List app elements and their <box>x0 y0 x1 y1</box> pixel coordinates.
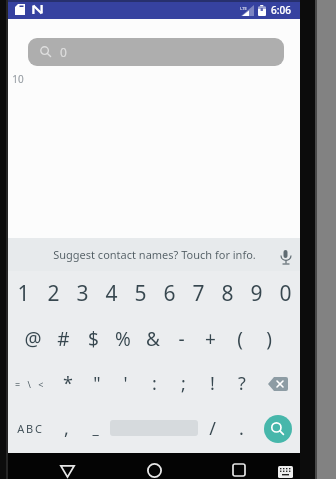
staticText: 0 <box>60 44 67 60</box>
staticText: : <box>152 371 157 396</box>
staticText: ? <box>238 371 246 396</box>
staticText: ( <box>237 326 243 352</box>
staticText: ) <box>266 326 272 352</box>
button[interactable]: - <box>167 316 196 361</box>
staticText: 5 <box>134 279 147 308</box>
button[interactable]: , <box>52 406 81 451</box>
button[interactable]: 7 <box>184 271 213 316</box>
button[interactable]: 1 <box>8 271 38 316</box>
staticText: 6 <box>163 279 176 308</box>
button[interactable] <box>53 464 81 479</box>
staticText: 8 <box>221 279 234 308</box>
button[interactable]: = \ < <box>8 361 53 406</box>
button[interactable]: ; <box>169 361 198 406</box>
button[interactable] <box>225 458 253 479</box>
staticText: ABC <box>17 421 44 436</box>
button[interactable]: 0 <box>271 271 300 316</box>
button[interactable]: ! <box>198 361 227 406</box>
staticText: 2 <box>47 279 60 308</box>
button[interactable]: 9 <box>242 271 271 316</box>
button[interactable]: _ <box>81 406 110 451</box>
staticText: / <box>209 416 216 441</box>
button[interactable]: 3 <box>68 271 97 316</box>
staticText: 3 <box>76 279 89 308</box>
button[interactable]: 8 <box>213 271 242 316</box>
staticText: ' <box>123 371 128 396</box>
staticText: = \ < <box>15 378 46 390</box>
staticText: 6:06 <box>271 3 291 17</box>
button[interactable]: . <box>227 406 256 451</box>
button[interactable] <box>273 463 297 479</box>
button[interactable]: + <box>196 316 225 361</box>
button[interactable]: Suggest contact names? Touch for info. <box>8 238 300 271</box>
button[interactable]: 5 <box>126 271 155 316</box>
button[interactable] <box>110 406 198 451</box>
staticText: 0 <box>279 279 292 308</box>
staticText: 4 <box>105 279 118 308</box>
button[interactable]: ? <box>227 361 256 406</box>
button[interactable]: % <box>108 316 138 361</box>
staticText: 7 <box>192 279 205 308</box>
staticText: % <box>115 326 131 352</box>
staticText: - <box>178 326 185 352</box>
button[interactable]: ' <box>111 361 140 406</box>
button[interactable]: ) <box>254 316 283 361</box>
button[interactable]: / <box>198 406 227 451</box>
button[interactable] <box>140 458 168 479</box>
staticText: Suggest contact names? Touch for info. <box>53 247 256 262</box>
button[interactable]: " <box>82 361 111 406</box>
button[interactable]: : <box>140 361 169 406</box>
staticText: _ <box>92 419 99 438</box>
staticText: + <box>205 326 216 352</box>
staticText: & <box>146 326 160 352</box>
button[interactable] <box>256 361 300 406</box>
staticText: LTE <box>240 6 247 11</box>
button[interactable]: * <box>53 361 82 406</box>
button[interactable]: $ <box>78 316 108 361</box>
staticText: . <box>239 416 244 441</box>
staticText: * <box>63 371 73 396</box>
staticText: 1 <box>17 279 30 308</box>
button[interactable]: 2 <box>38 271 68 316</box>
staticText: ! <box>210 371 215 396</box>
button[interactable]: & <box>138 316 167 361</box>
staticText: , <box>64 416 69 441</box>
button[interactable]: 6 <box>155 271 184 316</box>
button[interactable]: ( <box>225 316 254 361</box>
button[interactable]: # <box>48 316 78 361</box>
staticText: $ <box>88 326 99 352</box>
button[interactable]: @ <box>18 316 48 361</box>
button[interactable] <box>256 406 300 451</box>
staticText: # <box>57 326 70 352</box>
staticText: @ <box>24 326 42 352</box>
button[interactable]: 0 <box>28 38 284 66</box>
staticText: 9 <box>250 279 263 308</box>
button[interactable]: 4 <box>97 271 126 316</box>
button[interactable]: ABC <box>8 406 52 451</box>
staticText: ; <box>181 371 186 396</box>
staticText: 10 <box>12 72 24 86</box>
staticText: " <box>93 371 101 396</box>
